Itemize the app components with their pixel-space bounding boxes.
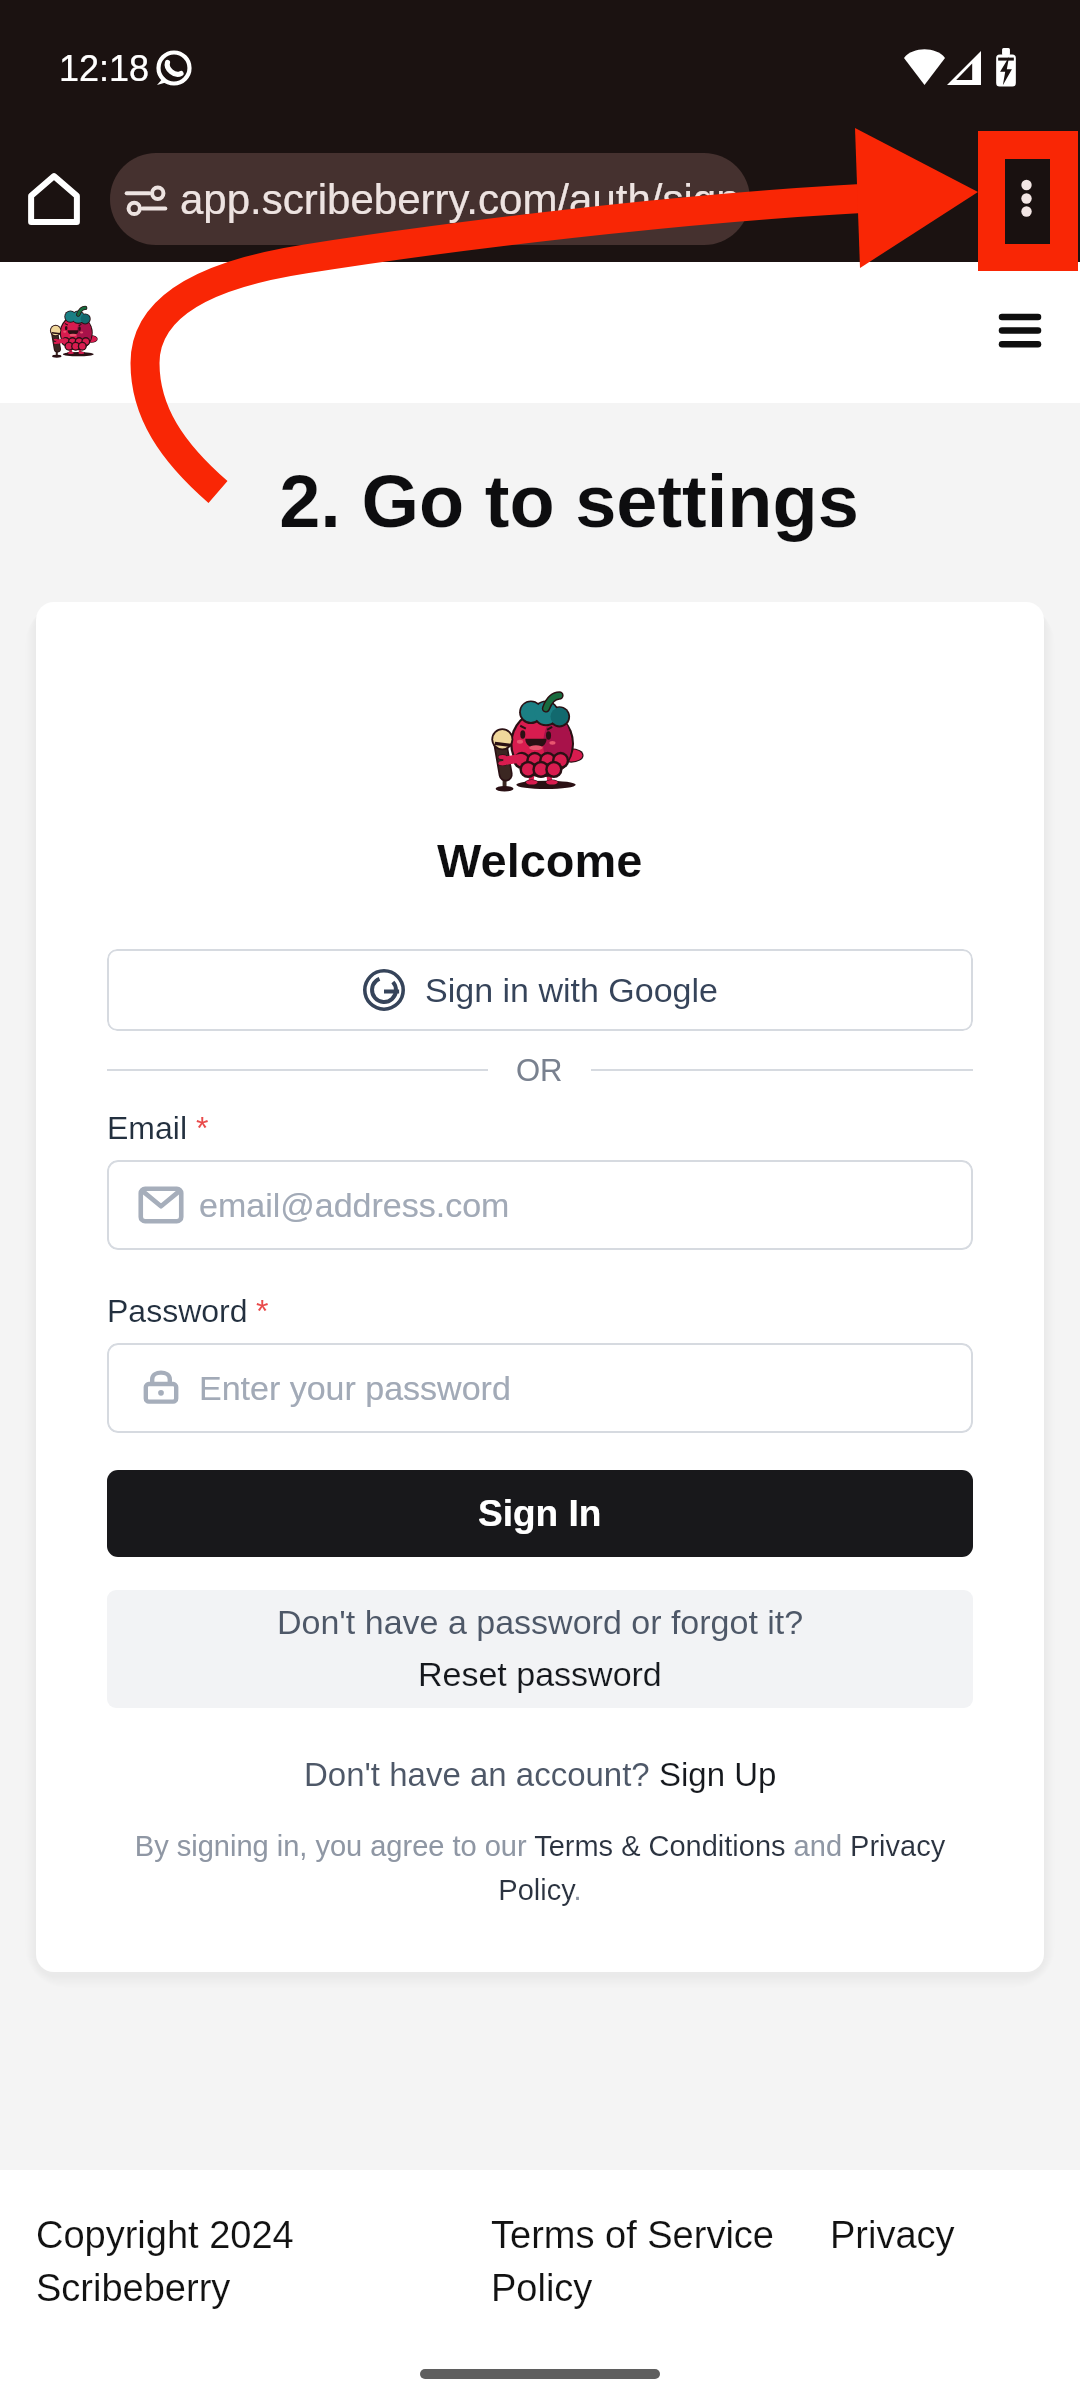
- staticText: Copyright 2024 Scribeberry: [36, 2214, 336, 2310]
- staticText: Don't have an account?: [304, 1756, 659, 1793]
- staticText: Email: [107, 1110, 188, 1146]
- button[interactable]: Home: [9, 154, 99, 244]
- staticText: Sign In: [478, 1493, 602, 1534]
- button[interactable]: Don't have a password or forgot it?: [107, 1590, 973, 1708]
- staticText: Enter your password: [199, 1369, 511, 1407]
- button[interactable]: email@address.com: [107, 1160, 973, 1250]
- staticText: Sign in with Google: [425, 971, 718, 1009]
- staticText: OR: [516, 1053, 563, 1088]
- button[interactable]: Terms of Service Policy: [491, 2214, 791, 2310]
- staticText: email@address.com: [199, 1186, 510, 1224]
- staticText: 2. Go to settings: [58, 460, 1080, 543]
- button[interactable]: Enter your password: [107, 1343, 973, 1433]
- staticText: *: [196, 1110, 209, 1146]
- button[interactable]: Sign In: [107, 1470, 973, 1557]
- button[interactable]: app.scribeberry.com/auth/sign: [110, 153, 750, 245]
- staticText: Terms of Service Policy: [491, 2214, 791, 2310]
- button[interactable]: Privacy: [830, 2214, 955, 2256]
- staticText: Password: [107, 1293, 248, 1329]
- button[interactable]: Copyright 2024 Scribeberry: [36, 2214, 336, 2310]
- staticText: Sign Up: [659, 1756, 777, 1793]
- button[interactable]: Open menu: [980, 290, 1060, 370]
- staticText: Welcome: [437, 834, 643, 887]
- button[interactable]: Sign Up: [659, 1756, 777, 1793]
- staticText: By signing in, you agree to our Terms & …: [107, 1830, 973, 1906]
- staticText: app.scribeberry.com/auth/sign: [180, 176, 740, 223]
- button[interactable]: Sign in with Google: [107, 949, 973, 1031]
- staticText: Don't have a password or forgot it?: [277, 1603, 804, 1641]
- button[interactable]: Scribeberry home: [42, 303, 100, 361]
- staticText: Privacy: [830, 2214, 955, 2256]
- staticText: 12:18: [59, 48, 150, 88]
- staticText: *: [256, 1293, 269, 1329]
- staticText: Reset password: [418, 1655, 662, 1693]
- button[interactable]: More options: [978, 131, 1078, 231]
